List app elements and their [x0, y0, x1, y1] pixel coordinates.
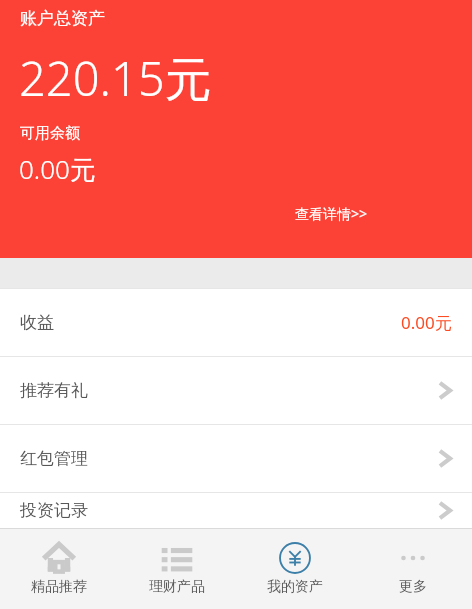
staticText: 推荐有礼	[20, 380, 88, 401]
staticText: 理财产品	[149, 578, 205, 596]
staticText: 220.15元	[19, 46, 212, 110]
staticText: 投资记录	[20, 500, 88, 521]
button[interactable]: 精品推荐	[0, 528, 118, 609]
other: 精品推荐	[42, 541, 76, 575]
button[interactable]: 更多	[354, 528, 472, 609]
button[interactable]: 推荐有礼	[0, 357, 472, 424]
button[interactable]: 查看详情>>	[291, 200, 372, 227]
other: 更多	[396, 541, 430, 575]
staticText: 可用余额	[20, 124, 80, 143]
staticText: 0.00元	[19, 151, 96, 187]
staticText: 更多	[399, 578, 427, 596]
staticText: 0.00元	[401, 311, 452, 334]
staticText: 我的资产	[267, 578, 323, 596]
other: 理财产品	[160, 541, 194, 575]
staticText: 收益	[20, 312, 54, 333]
staticText: 精品推荐	[31, 578, 87, 596]
button[interactable]: 收益	[0, 289, 472, 356]
button[interactable]: 红包管理	[0, 425, 472, 492]
button[interactable]: 投资记录	[0, 493, 472, 528]
other: 我的资产	[278, 541, 312, 575]
button[interactable]: 理财产品	[118, 528, 236, 609]
staticText: 查看详情>>	[295, 204, 368, 223]
staticText: 红包管理	[20, 448, 88, 469]
staticText: 账户总资产	[20, 8, 105, 29]
button[interactable]: 我的资产	[236, 528, 354, 609]
